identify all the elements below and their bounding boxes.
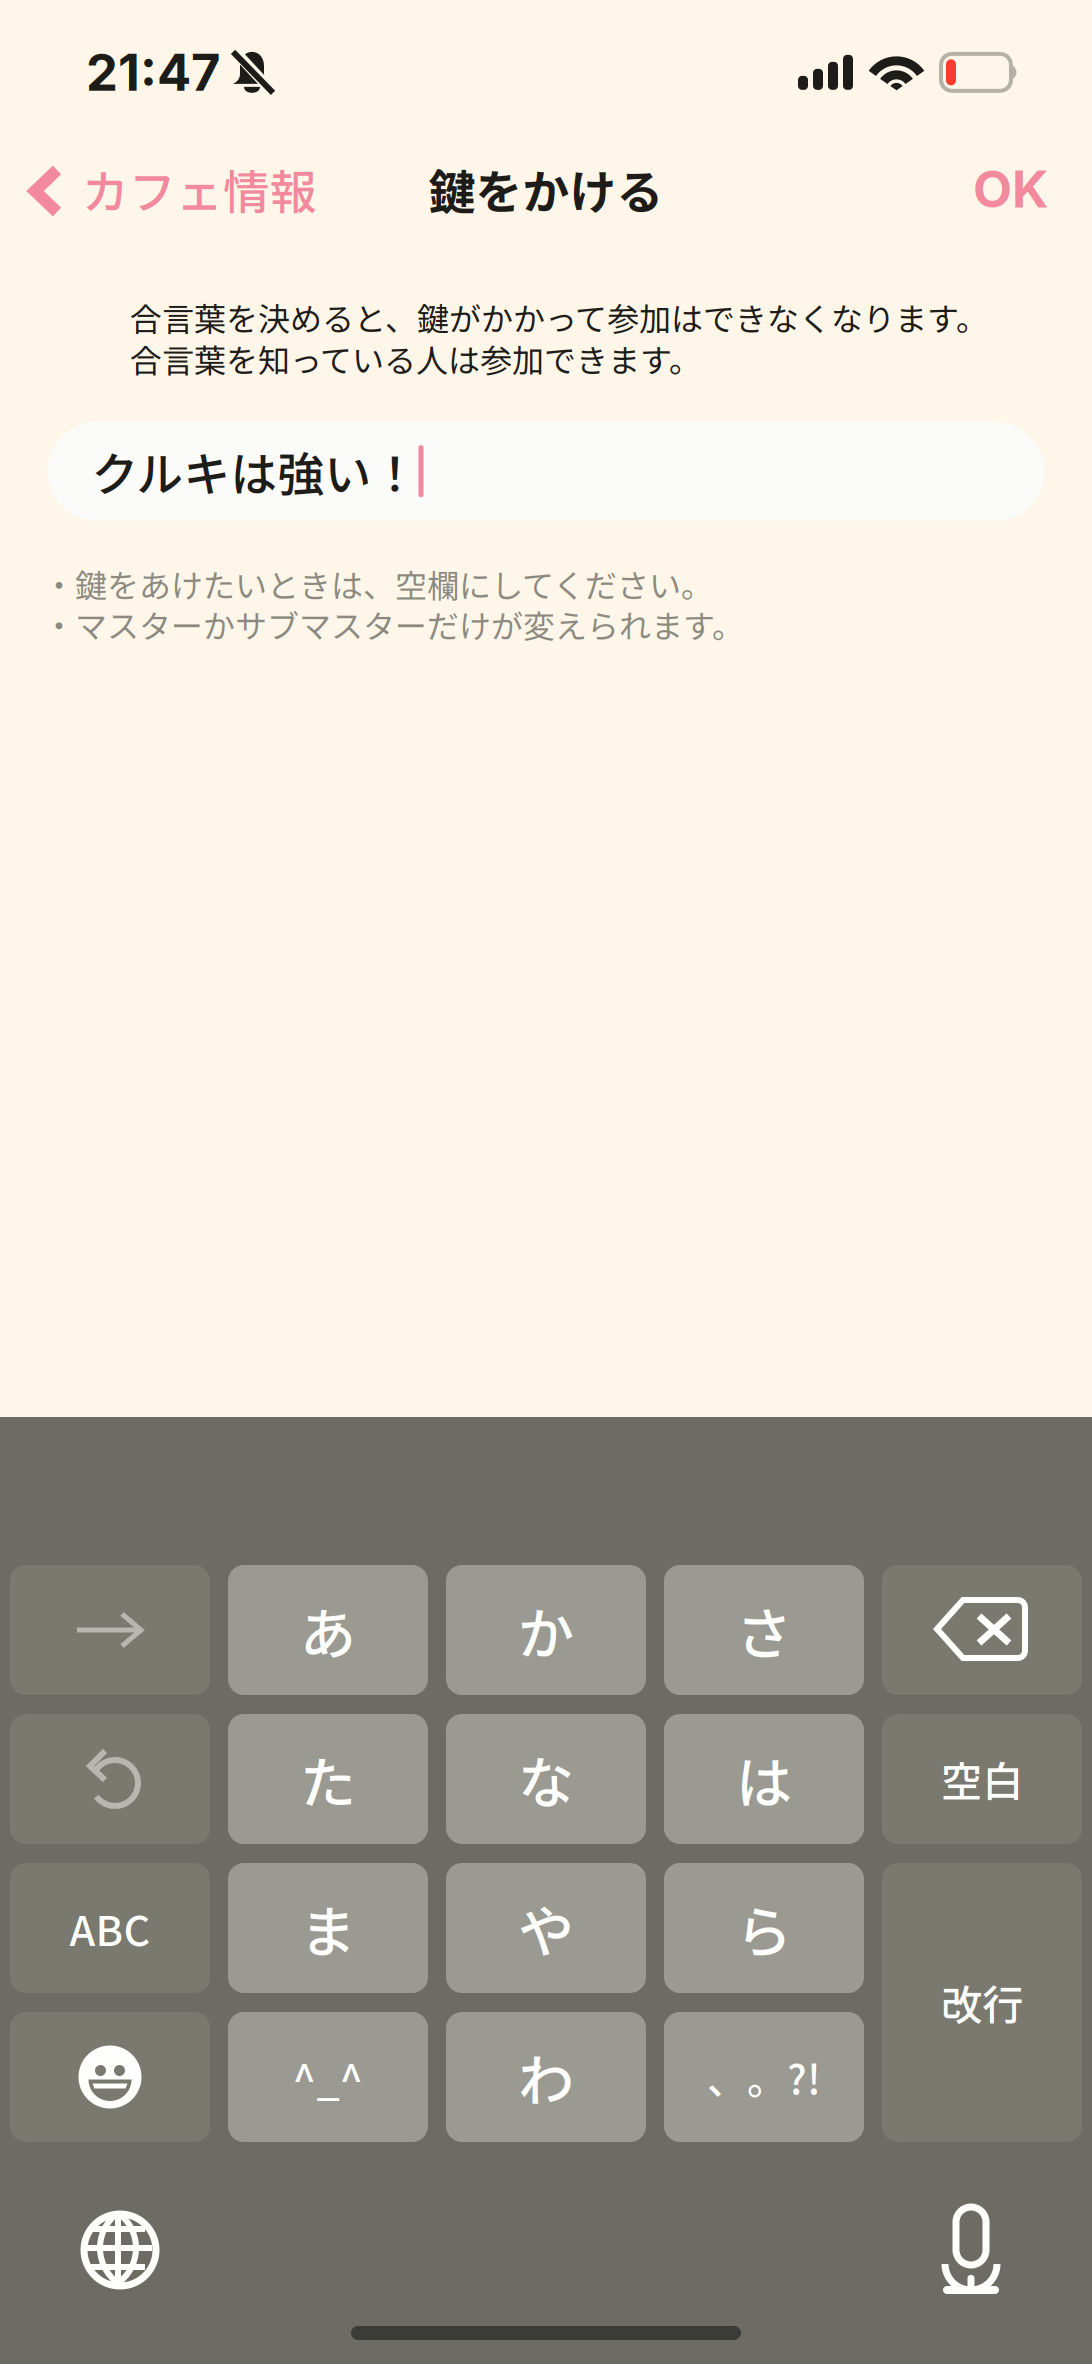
staticText: さ <box>736 1589 792 1671</box>
button[interactable]: 、。?! <box>664 2012 864 2142</box>
button[interactable]: Undo <box>10 1714 210 1844</box>
button[interactable]: Delete <box>882 1565 1082 1695</box>
staticText: クルキは強い！ <box>91 437 418 505</box>
staticText: な <box>518 1738 574 1820</box>
staticText: 21:47 <box>86 42 220 103</box>
button[interactable]: ま <box>228 1863 428 1993</box>
staticText: カフェ情報 <box>82 155 317 223</box>
staticText: ら <box>736 1887 792 1969</box>
staticText: あ <box>300 1589 356 1671</box>
staticText: ・鍵をあけたいときは、空欄にしてください。 ・マスターかサブマスターだけが変えら… <box>43 561 744 647</box>
staticText: た <box>300 1738 356 1820</box>
button[interactable]: さ <box>664 1565 864 1695</box>
staticText: か <box>518 1589 574 1671</box>
staticText: 鍵をかける <box>428 155 663 223</box>
staticText: OK <box>973 158 1048 220</box>
button[interactable]: あ <box>228 1565 428 1695</box>
button[interactable]: な <box>446 1714 646 1844</box>
button[interactable]: カフェ情報 <box>0 141 337 237</box>
button[interactable]: Emoji <box>10 2012 210 2142</box>
button[interactable]: ABC <box>10 1863 210 1993</box>
button[interactable]: Dictate <box>942 2206 1000 2294</box>
staticText: ま <box>300 1887 356 1969</box>
staticText: は <box>736 1738 792 1820</box>
staticText: ^_^ <box>292 2047 363 2107</box>
button[interactable]: ^_^ <box>228 2012 428 2142</box>
button[interactable]: か <box>446 1565 646 1695</box>
staticText: ABC <box>69 1898 150 1958</box>
staticText: や <box>518 1887 574 1969</box>
button[interactable]: ら <box>664 1863 864 1993</box>
button[interactable]: 改行 <box>882 1863 1082 2142</box>
button[interactable]: OK <box>929 141 1092 237</box>
button[interactable]: た <box>228 1714 428 1844</box>
button[interactable]: Next candidate <box>10 1565 210 1695</box>
staticText: 改行 <box>941 1973 1023 2032</box>
button[interactable]: わ <box>446 2012 646 2142</box>
button[interactable]: や <box>446 1863 646 1993</box>
button[interactable]: 空白 <box>882 1714 1082 1844</box>
button[interactable]: Switch keyboard <box>82 2212 158 2288</box>
staticText: 空白 <box>941 1749 1023 1809</box>
staticText: わ <box>518 2036 574 2118</box>
staticText: 、。?! <box>707 2048 821 2106</box>
staticText: 合言葉を決めると、鍵がかかって参加はできなくなります。 合言葉を知っている人は参… <box>130 294 988 382</box>
button[interactable]: は <box>664 1714 864 1844</box>
